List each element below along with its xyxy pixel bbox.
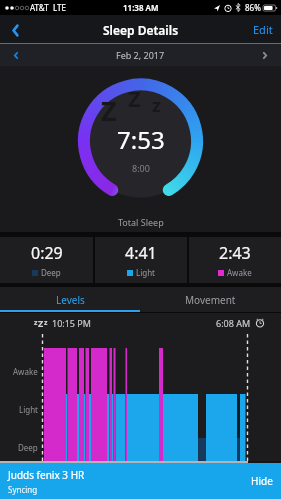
staticText: Syncing xyxy=(8,484,38,495)
staticText: 2:43 xyxy=(219,242,251,264)
staticText: LTE xyxy=(53,2,66,13)
staticText: 0:29 xyxy=(31,242,63,264)
staticText: Hide xyxy=(251,474,273,488)
staticText: 8:00 xyxy=(132,162,150,174)
staticText: Deep xyxy=(41,267,61,278)
staticText: Awake xyxy=(13,366,38,377)
staticText: Total Sleep xyxy=(118,216,164,228)
staticText: 7:53 xyxy=(117,123,165,156)
staticText: Light xyxy=(136,267,156,278)
button[interactable] xyxy=(4,18,26,42)
staticText: Awake xyxy=(227,267,252,278)
button[interactable]: Hide xyxy=(251,474,273,488)
button[interactable]: 4:41 xyxy=(95,237,187,283)
staticText: Z xyxy=(101,92,117,129)
staticText: 6:08 AM xyxy=(216,317,251,329)
staticText: z xyxy=(44,318,48,328)
staticText: Z xyxy=(128,83,141,113)
staticText: Deep xyxy=(18,442,38,453)
button[interactable]: Edit xyxy=(253,22,273,37)
staticText: Feb 2, 2017 xyxy=(116,49,165,61)
button[interactable]: 2:43 xyxy=(189,237,281,283)
staticText: Z xyxy=(38,317,44,329)
staticText: z xyxy=(34,318,38,328)
button[interactable]: Levels xyxy=(0,287,140,312)
staticText: Levels xyxy=(56,293,85,307)
button[interactable]: Movement xyxy=(140,287,281,312)
staticText: 11:38 AM xyxy=(123,2,159,13)
button[interactable]: 0:29 xyxy=(0,237,93,283)
staticText: Movement xyxy=(185,293,236,307)
staticText: Edit xyxy=(253,22,273,37)
staticText: 10:15 PM xyxy=(52,317,91,329)
staticText: 86% xyxy=(245,2,261,13)
staticText: AT&T xyxy=(30,2,49,13)
button[interactable] xyxy=(257,47,273,63)
staticText: Sleep Details xyxy=(103,22,179,38)
staticText: 4:41 xyxy=(125,242,157,264)
staticText: Light xyxy=(19,404,39,415)
staticText: Judds fenix 3 HR xyxy=(8,468,85,482)
staticText: z xyxy=(152,93,161,118)
button[interactable] xyxy=(8,47,24,63)
